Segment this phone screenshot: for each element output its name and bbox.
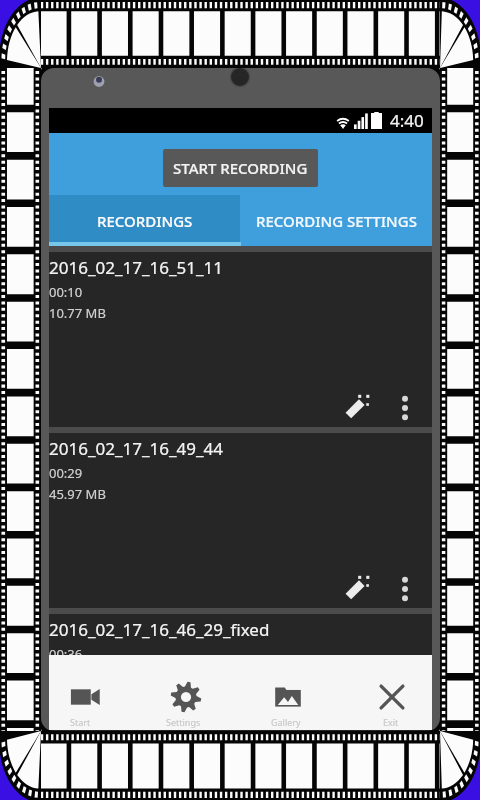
button[interactable]: RECORDINGS [49,195,240,246]
button[interactable]: Auto fix [340,387,378,425]
staticText: 45.97 MB [49,485,106,503]
staticText: Exit [383,716,399,728]
staticText: 2016_02_17_16_51_11 [49,256,223,279]
button[interactable]: Start [37,655,133,730]
staticText: Settings [166,716,201,728]
staticText: 00:29 [49,464,83,482]
staticText: 10.77 MB [49,304,106,322]
button[interactable]: Auto fix [340,749,378,787]
button[interactable]: RECORDING SETTINGS [240,195,432,246]
staticText: 00:36 [49,645,83,663]
staticText: 4:40 [390,109,424,132]
button[interactable]: 2016_02_17_16_51_11 [49,252,432,427]
button[interactable]: 2016_02_17_16_49_44 [49,433,432,608]
staticText: RECORDING SETTINGS [256,211,417,231]
staticText: 2016_02_17_16_46_29_fixed [49,618,270,641]
staticText: RECORDINGS [97,211,193,231]
staticText: START RECORDING [173,158,308,178]
button[interactable]: More options [389,392,421,424]
staticText: Start [70,716,91,728]
button[interactable]: Exit [344,655,440,730]
button[interactable]: START RECORDING [163,149,318,187]
staticText: 2016_02_17_16_49_44 [49,437,223,460]
staticText: Gallery [271,716,301,728]
button[interactable]: More options [389,573,421,605]
button[interactable]: Auto fix [340,568,378,606]
button[interactable]: Settings [138,655,234,730]
button[interactable]: 2016_02_17_16_46_29_fixed [49,614,432,789]
staticText: 00:10 [49,283,83,301]
button[interactable]: More options [389,754,421,786]
button[interactable]: Gallery [240,655,336,730]
